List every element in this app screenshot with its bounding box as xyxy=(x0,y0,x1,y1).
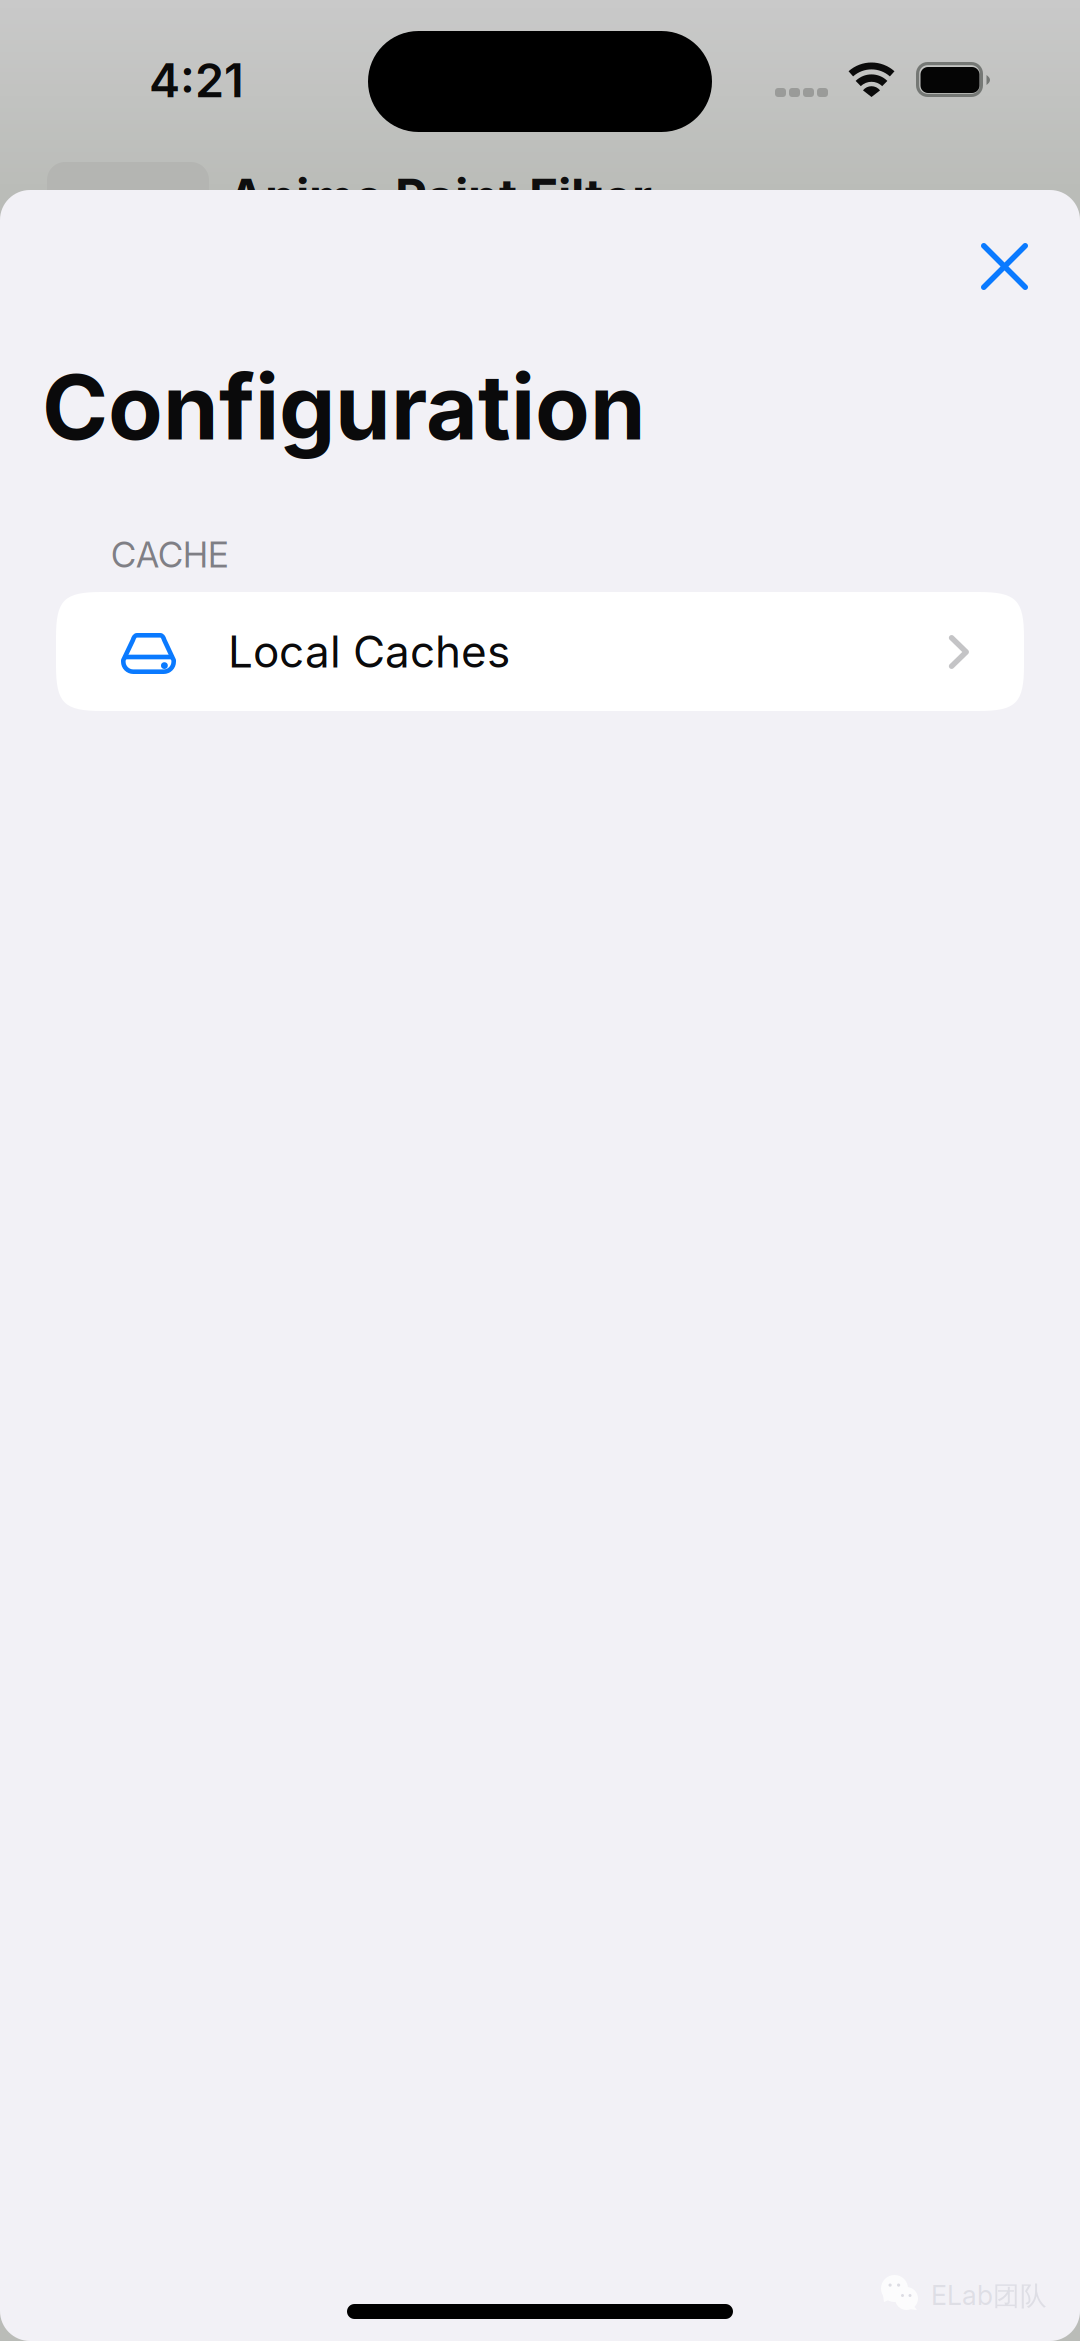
staticText: Anime Paint Filter xyxy=(228,167,652,227)
staticText: Local Caches xyxy=(228,625,510,678)
staticText: ELab团队 xyxy=(931,2279,1047,2313)
staticText: CACHE xyxy=(111,534,228,576)
button[interactable]: Close xyxy=(955,217,1054,316)
button[interactable]: Local Caches xyxy=(56,592,1024,711)
staticText: 4:21 xyxy=(149,52,244,108)
staticText: Configuration xyxy=(42,353,646,461)
